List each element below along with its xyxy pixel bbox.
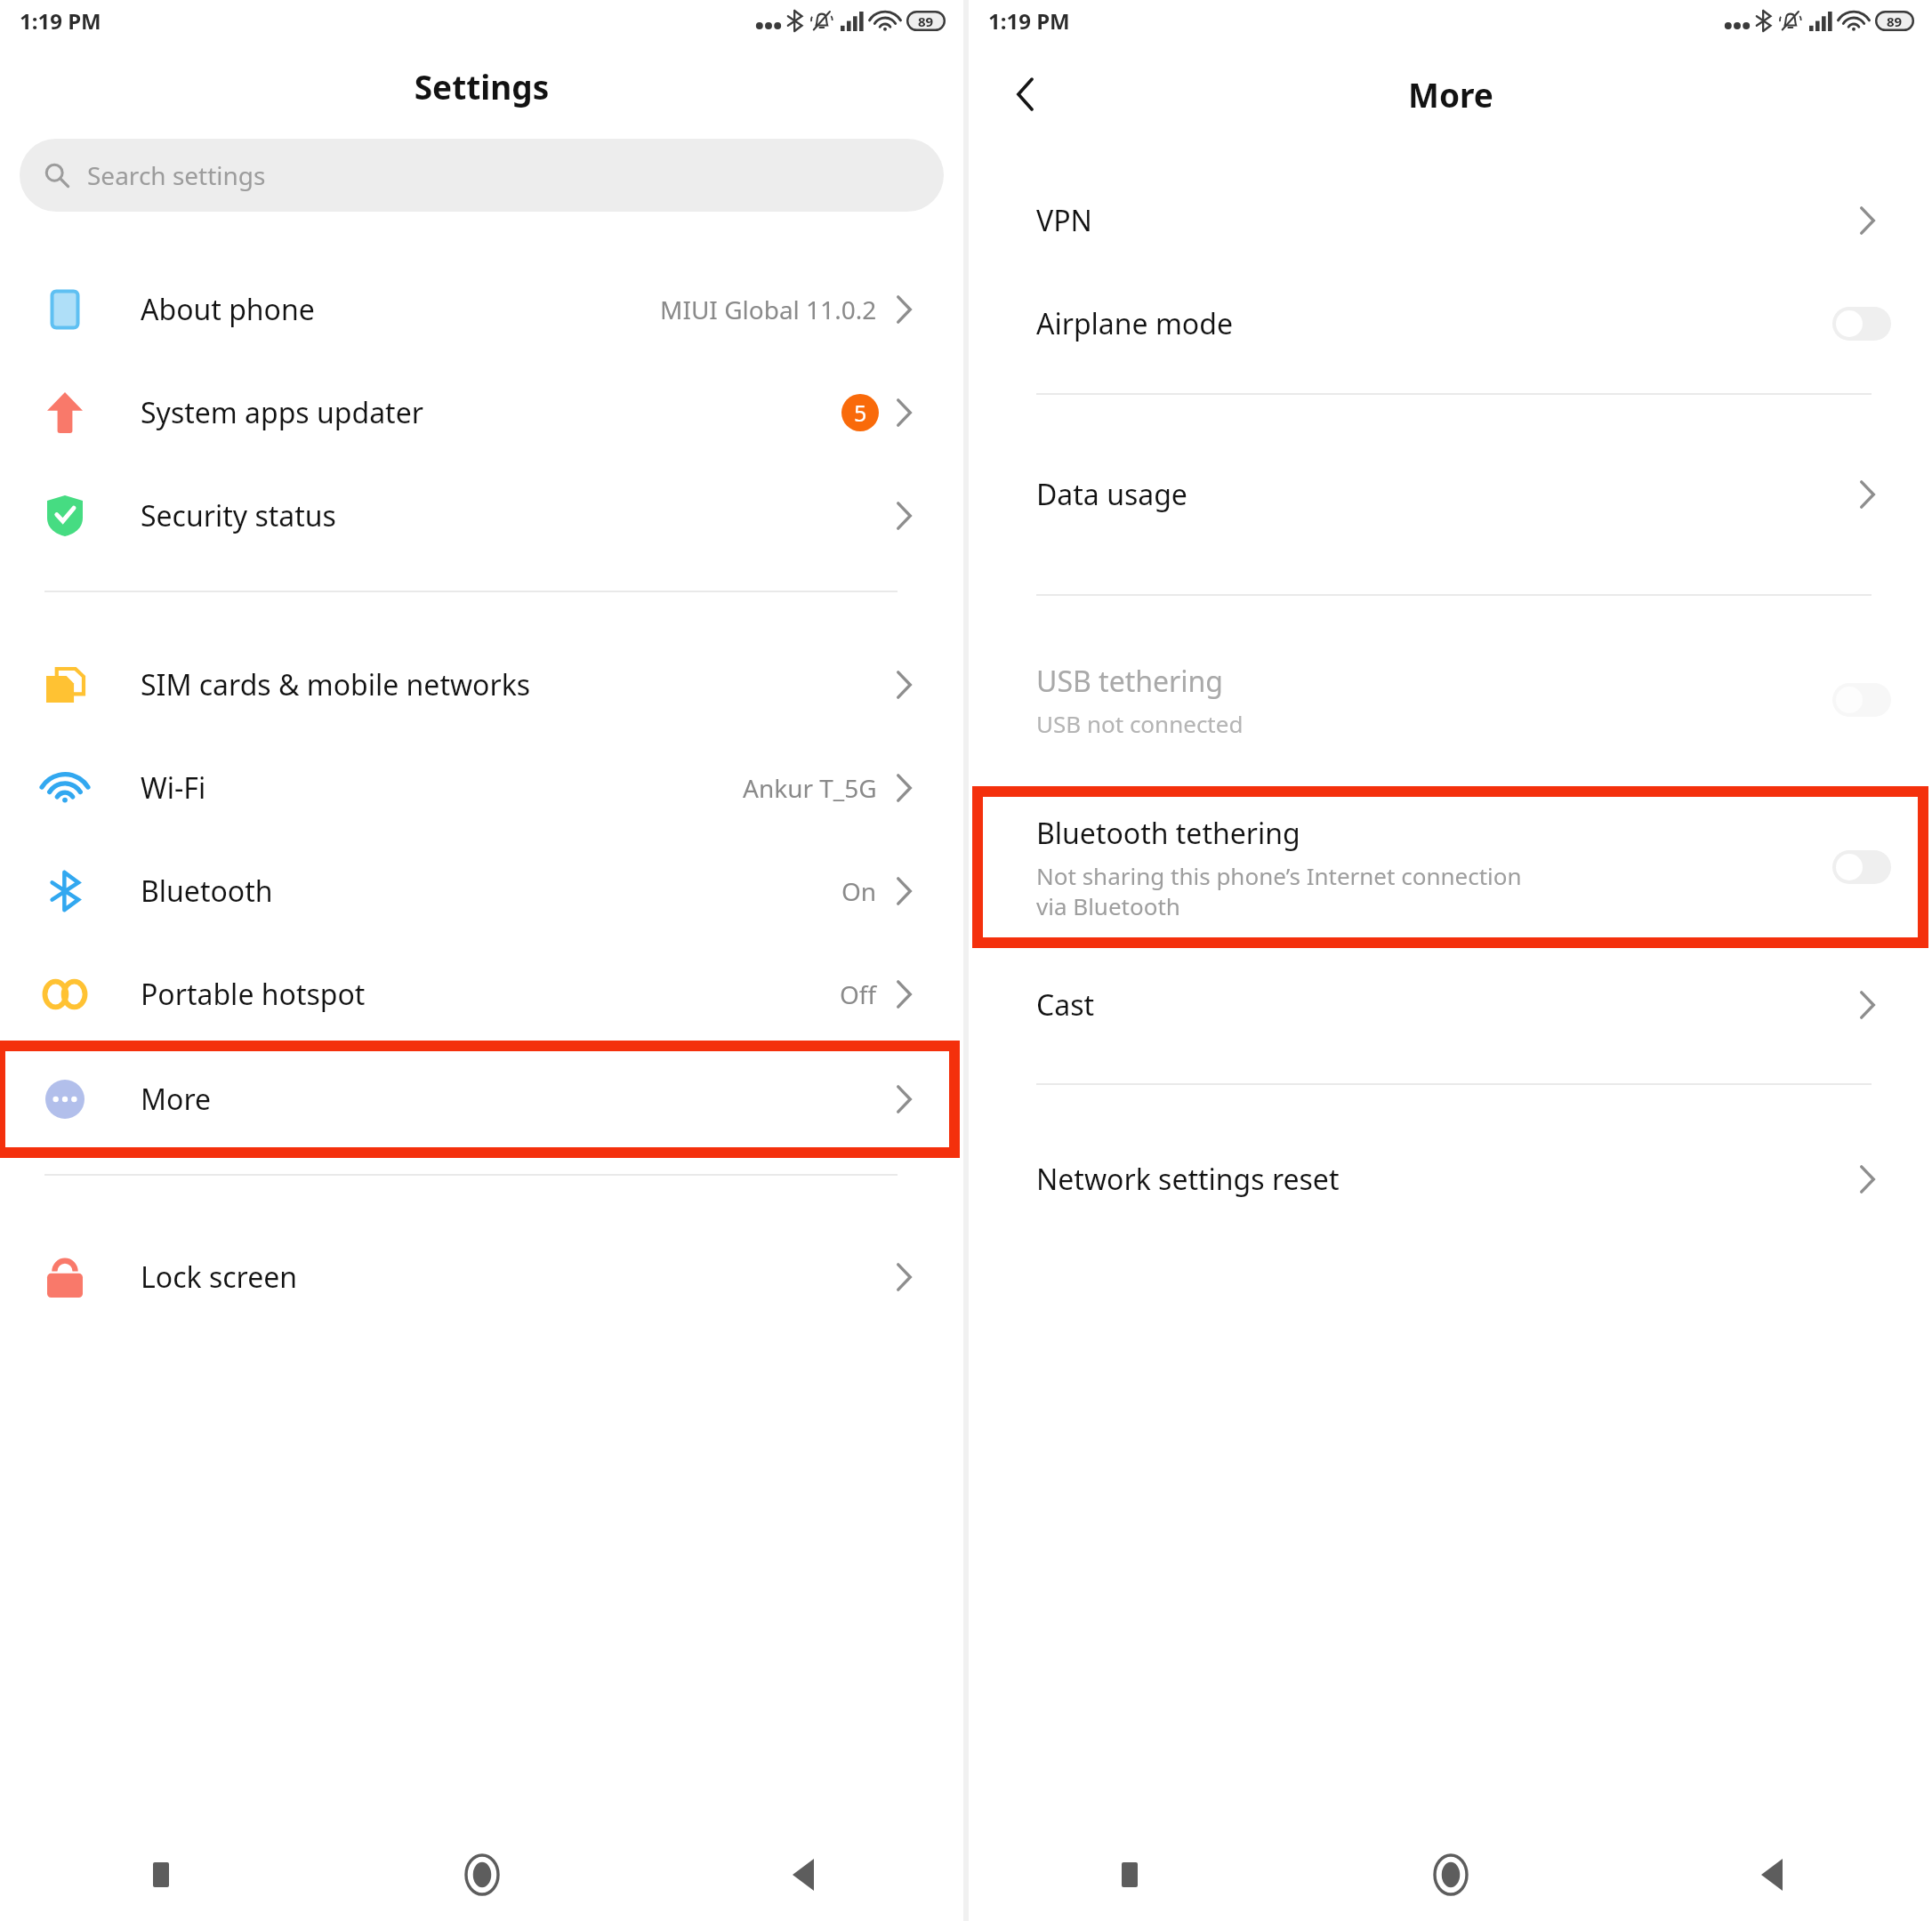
button[interactable]: More: [0, 1046, 963, 1153]
staticText: Network settings reset: [1036, 1160, 1340, 1199]
button[interactable]: Cast: [969, 953, 1932, 1057]
button[interactable]: Security status: [0, 464, 963, 567]
staticText: Bluetooth tethering: [1036, 814, 1300, 853]
button[interactable]: Toggle: [1832, 683, 1891, 717]
staticText: 5: [854, 398, 867, 428]
button[interactable]: Lock screen: [0, 1226, 963, 1329]
button[interactable]: Wi-Fi: [0, 736, 963, 840]
staticText: Lock screen: [141, 1258, 298, 1297]
staticText: SIM cards & mobile networks: [141, 665, 531, 704]
button[interactable]: Airplane mode: [969, 272, 1932, 375]
staticText: More: [1408, 72, 1493, 117]
button[interactable]: Home: [1290, 1829, 1611, 1921]
staticText: Data usage: [1036, 475, 1187, 514]
button[interactable]: About phone: [0, 258, 963, 361]
button[interactable]: Back: [642, 1829, 963, 1921]
staticText: Cast: [1036, 985, 1095, 1025]
staticText: Search settings: [87, 158, 266, 192]
button[interactable]: Data usage: [969, 443, 1932, 546]
staticText: System apps updater: [141, 393, 423, 432]
button[interactable]: Back: [999, 68, 1051, 120]
button[interactable]: System apps updater: [0, 361, 963, 464]
staticText: Airplane mode: [1036, 304, 1233, 343]
button[interactable]: Home: [321, 1829, 642, 1921]
staticText: Portable hotspot: [141, 975, 366, 1014]
staticText: Wi-Fi: [141, 768, 206, 808]
staticText: Not sharing this phone’s Internet connec…: [1036, 860, 1522, 921]
button[interactable]: Back: [1611, 1829, 1932, 1921]
staticText: Security status: [141, 496, 336, 535]
button[interactable]: Bluetooth tethering: [969, 792, 1932, 943]
button[interactable]: Toggle: [1832, 850, 1891, 884]
button[interactable]: Toggle: [1832, 307, 1891, 341]
button[interactable]: SIM cards & mobile networks: [0, 633, 963, 736]
staticText: USB not connected: [1036, 708, 1244, 739]
staticText: Bluetooth: [141, 872, 273, 911]
staticText: 1:19 PM: [20, 6, 101, 36]
button[interactable]: Recents: [0, 1829, 321, 1921]
staticText: About phone: [141, 290, 315, 329]
button[interactable]: Portable hotspot: [0, 943, 963, 1046]
button[interactable]: Network settings reset: [969, 1128, 1932, 1231]
staticText: Off: [840, 977, 877, 1011]
button[interactable]: Search settings: [20, 139, 944, 212]
staticText: 1:19 PM: [988, 6, 1070, 36]
staticText: VPN: [1036, 201, 1092, 240]
staticText: 89: [1887, 12, 1903, 30]
staticText: Ankur T_5G: [743, 771, 877, 805]
staticText: On: [841, 874, 877, 908]
button[interactable]: Bluetooth: [0, 840, 963, 943]
staticText: 89: [918, 12, 934, 30]
staticText: MIUI Global 11.0.2: [660, 293, 877, 326]
button[interactable]: VPN: [969, 169, 1932, 272]
staticText: More: [141, 1080, 212, 1119]
staticText: Settings: [0, 64, 963, 109]
button[interactable]: Recents: [969, 1829, 1290, 1921]
button[interactable]: USB tethering: [969, 633, 1932, 767]
staticText: USB tethering: [1036, 662, 1223, 701]
